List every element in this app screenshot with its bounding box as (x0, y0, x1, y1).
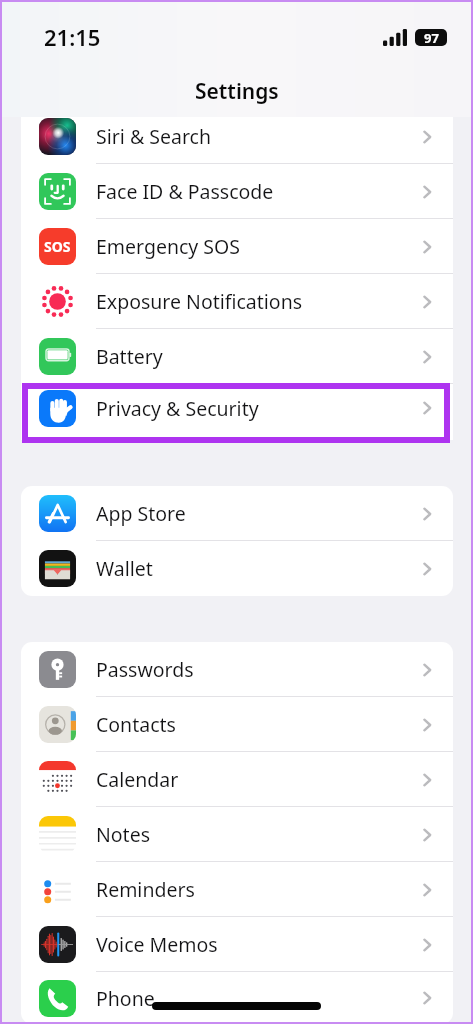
staticText: Voice Memos (96, 931, 218, 958)
staticText: Siri & Search (96, 123, 211, 150)
button[interactable]: Privacy & Security (21, 384, 453, 432)
staticText: Phone (96, 985, 155, 1012)
button[interactable]: Face ID & Passcode (21, 164, 453, 219)
staticText: Notes (96, 821, 150, 848)
staticText: 21:15 (44, 22, 101, 52)
staticText: Reminders (96, 876, 195, 903)
staticText: Emergency SOS (96, 233, 240, 260)
staticText: Settings (195, 77, 279, 106)
staticText: 97 (424, 29, 439, 46)
staticText: Passwords (96, 656, 194, 683)
button[interactable]: App Store (21, 486, 453, 541)
button[interactable]: Exposure Notifications (21, 274, 453, 329)
staticText: Face ID & Passcode (96, 178, 274, 205)
button[interactable]: Contacts (21, 697, 453, 752)
button[interactable]: Voice Memos (21, 917, 453, 972)
staticText: Exposure Notifications (96, 288, 303, 315)
button[interactable]: Phone (21, 972, 453, 1024)
staticText: Calendar (96, 766, 179, 793)
staticText: App Store (96, 500, 186, 527)
button[interactable]: Reminders (21, 862, 453, 917)
button[interactable]: Calendar (21, 752, 453, 807)
staticText: Contacts (96, 711, 176, 738)
staticText: SOS (44, 237, 71, 256)
button[interactable]: Passwords (21, 642, 453, 697)
staticText: Wallet (96, 555, 153, 582)
button[interactable]: Battery (21, 329, 453, 384)
button[interactable]: SOS (21, 219, 453, 274)
staticText: Privacy & Security (96, 395, 259, 422)
staticText: Battery (96, 343, 163, 370)
button[interactable]: Wallet (21, 541, 453, 596)
button[interactable]: Siri & Search (21, 109, 453, 164)
button[interactable]: Notes (21, 807, 453, 862)
